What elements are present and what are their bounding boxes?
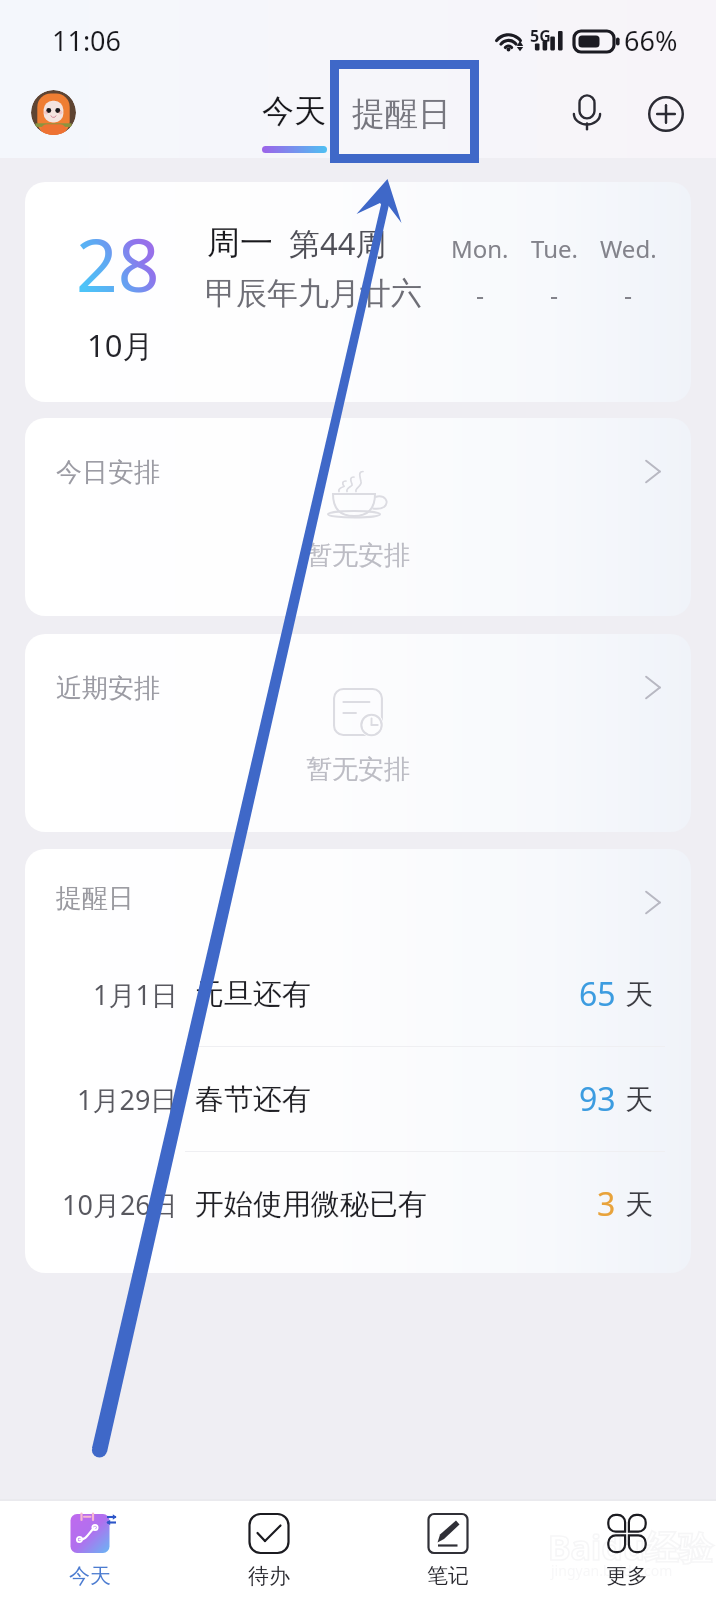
staticText: 笔记 <box>427 1563 469 1589</box>
staticText: 今天 <box>69 1563 111 1589</box>
button[interactable]: 1月29日 <box>25 1047 691 1152</box>
button[interactable]: Add <box>637 85 695 143</box>
staticText: Tue. <box>531 232 578 265</box>
staticText: 第44周 <box>289 222 387 264</box>
button[interactable]: Profile <box>31 90 76 135</box>
staticText: 天 <box>625 977 653 1012</box>
button[interactable]: 1月1日 <box>25 942 691 1047</box>
staticText: 元旦还有 <box>195 976 311 1013</box>
button[interactable]: 今日安排 <box>25 418 691 616</box>
staticText: 甲辰年九月廿六 <box>205 274 422 313</box>
button[interactable]: 28 <box>25 182 691 402</box>
button[interactable]: 更多 <box>537 1499 716 1600</box>
staticText: 周一 <box>207 222 273 264</box>
button[interactable]: 今天 <box>0 1499 179 1600</box>
staticText: 春节还有 <box>195 1081 311 1118</box>
button[interactable]: 今天 <box>252 88 336 158</box>
staticText: 开始使用微秘已有 <box>195 1186 427 1223</box>
button[interactable]: 10月26日 <box>25 1152 691 1256</box>
staticText: 66% <box>624 22 678 59</box>
staticText: 5G <box>530 25 551 47</box>
staticText: 93 <box>579 1077 616 1121</box>
staticText: Wed. <box>600 232 657 265</box>
staticText: Baidu经验 <box>548 1524 713 1570</box>
staticText: 天 <box>625 1082 653 1117</box>
button[interactable]: 近期安排 <box>25 634 691 832</box>
button[interactable]: 待办 <box>179 1499 358 1600</box>
staticText: 提醒日 <box>56 882 134 915</box>
button[interactable]: 笔记 <box>358 1499 537 1600</box>
staticText: 10月 <box>87 324 154 366</box>
staticText: 待办 <box>248 1563 290 1589</box>
staticText: 提醒日 <box>352 93 451 135</box>
button[interactable]: 提醒日 <box>340 88 462 158</box>
staticText: 今天 <box>262 91 326 131</box>
staticText: 10月26日 <box>62 1186 178 1223</box>
button[interactable]: 提醒日 <box>25 849 691 942</box>
staticText: - <box>550 278 559 312</box>
staticText: 3 <box>597 1182 616 1226</box>
staticText: 暂无安排 <box>306 539 410 572</box>
staticText: 1月1日 <box>93 976 178 1013</box>
staticText: jingyan.baidu.com <box>551 1561 673 1580</box>
staticText: 更多 <box>606 1563 648 1589</box>
staticText: Mon. <box>451 232 509 265</box>
staticText: 65 <box>579 972 616 1016</box>
button[interactable]: Voice input <box>558 83 616 141</box>
staticText: 28 <box>76 214 160 313</box>
staticText: 今日安排 <box>56 456 160 489</box>
staticText: 11:06 <box>52 22 122 59</box>
staticText: 1月29日 <box>77 1081 178 1118</box>
staticText: 近期安排 <box>56 672 160 705</box>
staticText: - <box>624 278 633 312</box>
staticText: - <box>476 278 485 312</box>
staticText: 暂无安排 <box>306 753 410 786</box>
staticText: 天 <box>625 1187 653 1222</box>
